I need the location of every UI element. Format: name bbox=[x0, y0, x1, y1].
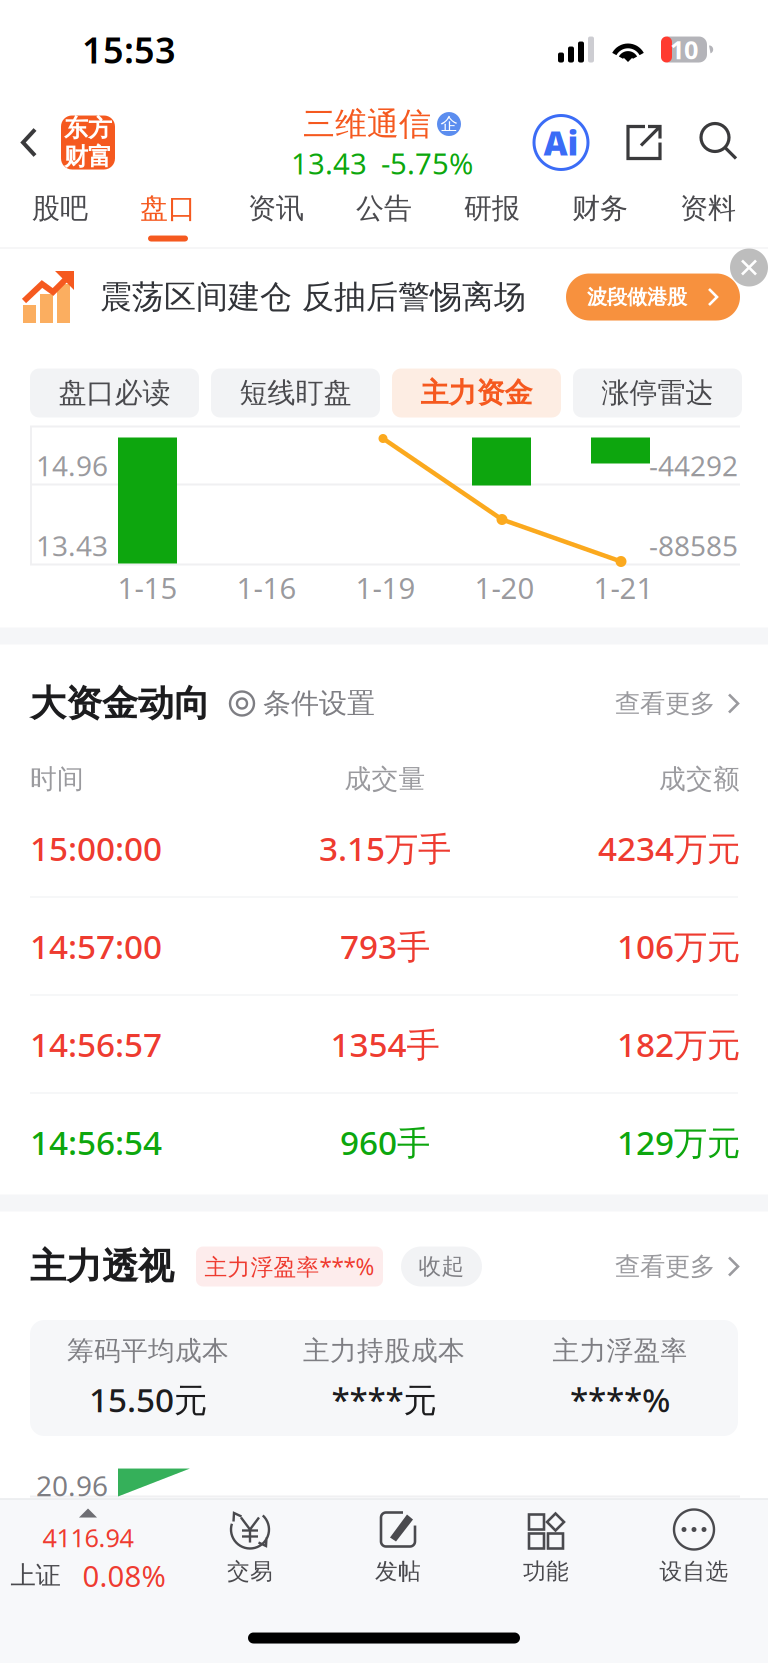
staticText: 主力浮盈率 bbox=[552, 1334, 687, 1367]
button[interactable]: 查看更多 bbox=[615, 1236, 740, 1296]
button[interactable]: 设自选 bbox=[620, 1499, 768, 1607]
staticText: 主力持股成本 bbox=[303, 1334, 465, 1367]
staticText: 功能 bbox=[523, 1557, 569, 1585]
button[interactable]: 东方财富 bbox=[58, 99, 118, 185]
staticText: 3.15万手 bbox=[319, 826, 451, 870]
button[interactable]: 财务 bbox=[546, 185, 654, 247]
staticText: 条件设置 bbox=[263, 686, 375, 721]
staticText: 成交额 bbox=[659, 763, 740, 795]
staticText: 短线盯盘 bbox=[239, 376, 351, 410]
staticText: -44292 bbox=[649, 447, 738, 484]
staticText: 资料 bbox=[680, 191, 736, 226]
staticText: 14.96 bbox=[36, 447, 108, 484]
staticText: 上证 bbox=[10, 1560, 60, 1591]
staticText: 1354手 bbox=[330, 1022, 439, 1066]
staticText: 主力透视 bbox=[30, 1244, 174, 1289]
button[interactable]: 研报 bbox=[438, 185, 546, 247]
staticText: 波段做港股 bbox=[587, 285, 687, 309]
staticText: 企 bbox=[440, 113, 457, 135]
button[interactable]: 盘口必读 bbox=[30, 368, 199, 417]
staticText: 财务 bbox=[572, 191, 628, 226]
staticText: 15:53 bbox=[82, 26, 176, 73]
staticText: 盘口 bbox=[140, 191, 196, 226]
staticText: 13.43 bbox=[291, 144, 367, 183]
button[interactable]: 返回 bbox=[0, 99, 58, 185]
button[interactable]: 波段做港股 bbox=[566, 273, 740, 320]
staticText: 财富 bbox=[64, 142, 112, 171]
button[interactable]: 盘口 bbox=[114, 185, 222, 247]
button[interactable]: 涨停雷达 bbox=[573, 368, 742, 417]
staticText: 查看更多 bbox=[615, 688, 715, 719]
staticText: 793手 bbox=[340, 924, 430, 968]
staticText: Ai bbox=[543, 120, 578, 165]
staticText: 涨停雷达 bbox=[601, 376, 713, 410]
button[interactable]: 收起 bbox=[383, 1246, 482, 1286]
staticText: 查看更多 bbox=[615, 1251, 715, 1282]
staticText: 时间 bbox=[30, 763, 84, 795]
staticText: ****% bbox=[570, 1377, 670, 1421]
staticText: 资讯 bbox=[248, 191, 304, 226]
staticText: 交易 bbox=[227, 1557, 273, 1585]
button[interactable]: 功能 bbox=[472, 1499, 620, 1607]
staticText: 1-19 bbox=[355, 568, 415, 607]
staticText: 20.96 bbox=[36, 1467, 108, 1504]
button[interactable]: 查看更多 bbox=[615, 673, 740, 733]
staticText: 主力浮盈率***% bbox=[204, 1251, 374, 1281]
staticText: 盘口必读 bbox=[58, 376, 170, 410]
button[interactable]: 资讯 bbox=[222, 185, 330, 247]
staticText: 4116.94 bbox=[42, 1520, 133, 1554]
button[interactable]: 股吧 bbox=[6, 185, 114, 247]
button[interactable]: 发帖 bbox=[324, 1499, 472, 1607]
staticText: 收起 bbox=[418, 1253, 464, 1280]
staticText: 1-15 bbox=[117, 568, 177, 607]
staticText: 震荡区间建仓 反抽后警惕离场 bbox=[100, 277, 526, 317]
staticText: 研报 bbox=[464, 191, 520, 226]
staticText: 1-16 bbox=[236, 568, 296, 607]
staticText: 公告 bbox=[356, 191, 412, 226]
staticText: 大资金动向 bbox=[30, 681, 210, 726]
staticText: 东方 bbox=[64, 113, 112, 143]
staticText: 设自选 bbox=[659, 1557, 728, 1585]
staticText: 1-20 bbox=[474, 568, 534, 607]
staticText: 1-21 bbox=[593, 568, 653, 607]
staticText: 0.08% bbox=[82, 1556, 165, 1595]
button[interactable]: 公告 bbox=[330, 185, 438, 247]
button[interactable]: 主力资金 bbox=[392, 368, 561, 417]
staticText: 三维通信 bbox=[303, 104, 431, 144]
staticText: 发帖 bbox=[375, 1557, 421, 1585]
staticText: 106万元 bbox=[617, 924, 740, 968]
staticText: ****元 bbox=[331, 1377, 436, 1421]
staticText: 14:56:54 bbox=[30, 1120, 162, 1164]
staticText: 15:00:00 bbox=[30, 826, 162, 870]
staticText: 股吧 bbox=[32, 191, 88, 226]
button[interactable]: 关闭 bbox=[730, 248, 768, 286]
staticText: -5.75% bbox=[381, 144, 473, 183]
staticText: 10 bbox=[670, 33, 698, 66]
button[interactable]: 4116.94 bbox=[0, 1499, 176, 1607]
button[interactable]: AI 助手 bbox=[530, 111, 592, 173]
staticText: 13.43 bbox=[36, 527, 108, 564]
button[interactable]: 搜索 bbox=[696, 119, 742, 165]
staticText: 4234万元 bbox=[598, 826, 740, 870]
button[interactable]: 条件设置 bbox=[210, 673, 375, 733]
button[interactable]: 交易 bbox=[176, 1499, 324, 1607]
button[interactable]: 分享 bbox=[622, 120, 666, 164]
staticText: 129万元 bbox=[617, 1120, 740, 1164]
staticText: 14:56:57 bbox=[30, 1022, 162, 1066]
staticText: 182万元 bbox=[617, 1022, 740, 1066]
staticText: 主力资金 bbox=[420, 376, 532, 410]
button[interactable]: 短线盯盘 bbox=[211, 368, 380, 417]
button[interactable]: 资料 bbox=[654, 185, 762, 247]
staticText: 筹码平均成本 bbox=[67, 1334, 229, 1367]
staticText: 14:57:00 bbox=[30, 924, 162, 968]
staticText: -88585 bbox=[649, 527, 738, 564]
staticText: 15.50元 bbox=[89, 1377, 207, 1421]
staticText: 成交量 bbox=[344, 763, 425, 795]
staticText: 960手 bbox=[340, 1120, 430, 1164]
